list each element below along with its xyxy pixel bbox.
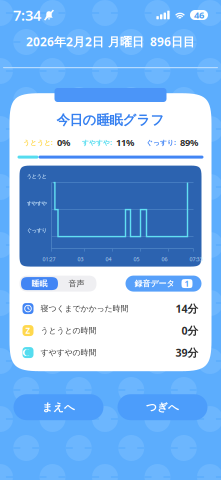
staticText: 寝つくまでかかった時間 <box>40 304 128 313</box>
staticText: うとうとの時間 <box>40 326 96 335</box>
staticText: うとうと <box>26 173 46 180</box>
button[interactable]: つぎへ <box>117 394 207 420</box>
staticText: 1 <box>184 278 189 289</box>
staticText: すやすや: <box>82 138 112 147</box>
staticText: 2026年2月2日 月曜日 896日目 <box>26 33 195 49</box>
staticText: ぐっすり <box>26 227 46 234</box>
staticText: 46 <box>194 9 204 21</box>
staticText: 11% <box>116 136 134 149</box>
staticText: 04 <box>105 256 111 263</box>
staticText: Z <box>25 325 30 336</box>
button[interactable]: まえへ <box>13 394 103 420</box>
staticText: 0分 <box>181 323 198 338</box>
button[interactable]: Z <box>13 320 207 342</box>
button[interactable]: 録音データ <box>125 276 201 292</box>
staticText: 14分 <box>175 301 198 316</box>
staticText: 06 <box>161 256 167 263</box>
staticText: 03 <box>77 256 83 263</box>
button[interactable]: 音声 <box>58 277 95 290</box>
staticText: 0% <box>57 136 70 149</box>
staticText: 睡眠 <box>31 279 47 288</box>
staticText: 39分 <box>175 345 198 360</box>
staticText: ぐっすり: <box>146 138 176 147</box>
staticText: つぎへ <box>146 401 179 414</box>
staticText: うとうと: <box>23 138 53 147</box>
staticText: 今日の睡眠グラフ <box>56 112 164 128</box>
staticText: すやすやの時間 <box>40 348 96 357</box>
button[interactable]: 寝つくまでかかった時間 <box>13 298 207 320</box>
staticText: 89% <box>180 136 198 149</box>
staticText: 7:34 <box>13 5 41 25</box>
staticText: 音声 <box>68 279 84 288</box>
staticText: 01:27 <box>42 256 55 263</box>
button[interactable]: 睡眠 <box>21 277 58 290</box>
staticText: すやすや <box>26 200 46 207</box>
button[interactable]: すやすやの時間 <box>13 342 207 364</box>
staticText: 07:33 <box>189 256 202 263</box>
staticText: 05 <box>133 256 139 263</box>
staticText: まえへ <box>42 401 75 414</box>
staticText: 録音データ <box>134 279 174 288</box>
